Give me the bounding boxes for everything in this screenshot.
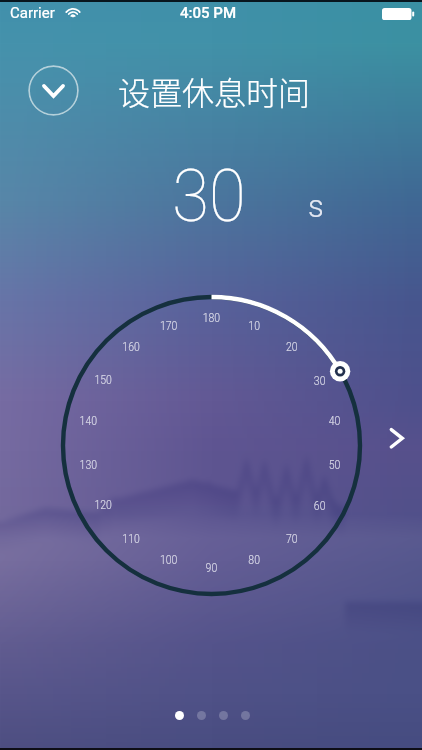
- button[interactable]: Page 3: [219, 711, 228, 720]
- staticText: Carrier: [10, 4, 55, 22]
- button[interactable]: Collapse: [28, 65, 79, 116]
- button[interactable]: Page 4: [241, 711, 250, 720]
- staticText: 4:05 PM: [180, 4, 237, 22]
- button[interactable]: Next: [380, 414, 422, 462]
- staticText: 设置休息时间: [118, 68, 311, 114]
- button[interactable]: Page 2: [197, 711, 206, 720]
- button[interactable]: Page 1: [175, 711, 184, 720]
